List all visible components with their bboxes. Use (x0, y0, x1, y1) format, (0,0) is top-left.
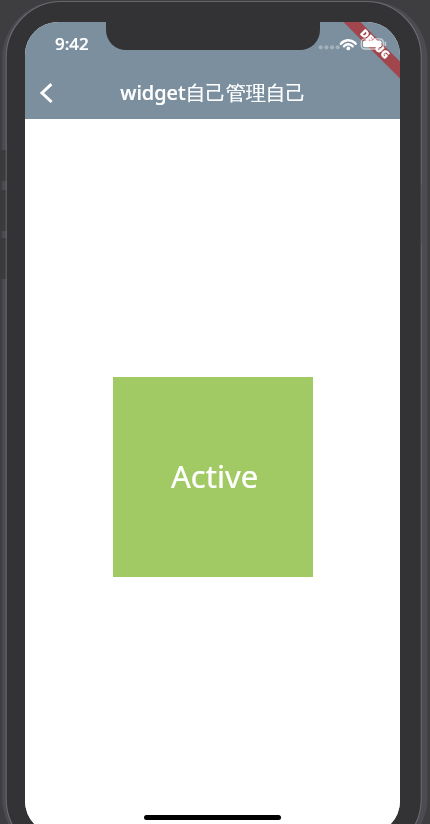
staticText: Active (171, 455, 259, 497)
staticText: DEBUG (357, 26, 394, 62)
staticText: widget自己管理自己 (120, 79, 306, 106)
button[interactable]: Back (27, 69, 75, 117)
staticText: 9:42 (55, 32, 89, 55)
button[interactable]: Active (113, 377, 313, 577)
